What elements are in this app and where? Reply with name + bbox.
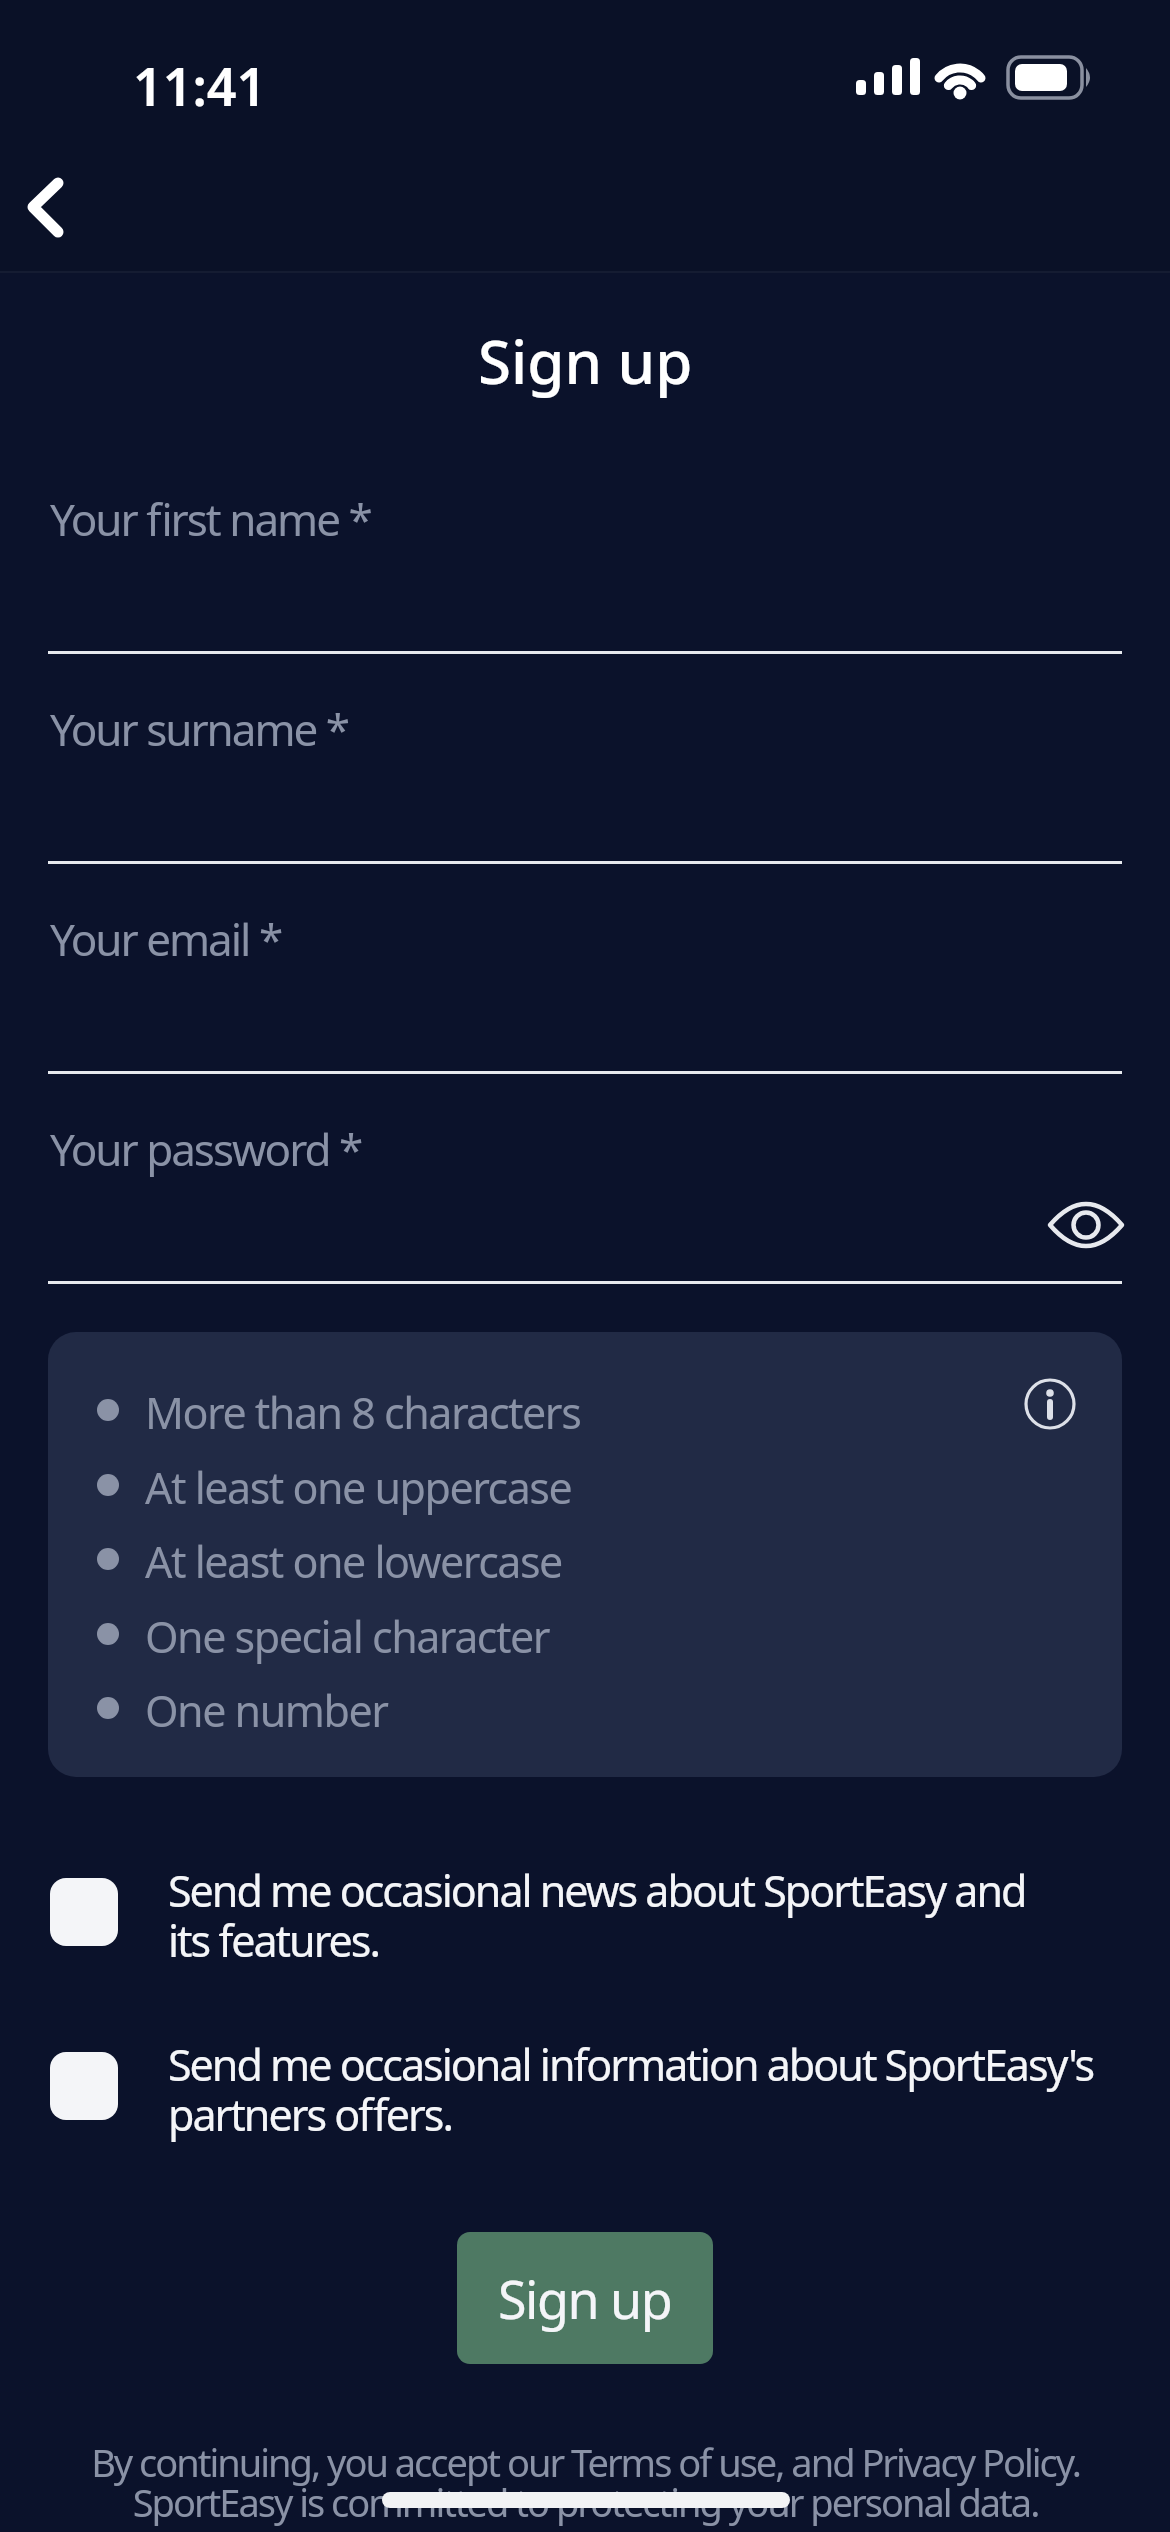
button[interactable]: By continuing, you accept our Terms of u… bbox=[0, 2436, 1170, 2528]
button[interactable] bbox=[48, 1125, 1122, 1285]
button[interactable] bbox=[48, 495, 1122, 655]
button[interactable] bbox=[1020, 1374, 1080, 1434]
button[interactable] bbox=[50, 2034, 1122, 2144]
staticText: Your password * bbox=[50, 1119, 362, 1179]
staticText: Your surname * bbox=[50, 699, 349, 759]
staticText: More than 8 characters bbox=[145, 1383, 581, 1442]
button[interactable] bbox=[10, 160, 100, 250]
staticText: Send me occasional information about Spo… bbox=[168, 2035, 1094, 2144]
staticText: Send me occasional news about SportEasy … bbox=[168, 1861, 1026, 1970]
staticText: One special character bbox=[145, 1607, 550, 1666]
button[interactable] bbox=[1040, 1180, 1130, 1270]
staticText: By continuing, you accept our Terms of u… bbox=[91, 2436, 1080, 2528]
staticText: 11:41 bbox=[133, 50, 267, 121]
button[interactable] bbox=[48, 915, 1122, 1075]
staticText: At least one uppercase bbox=[145, 1458, 572, 1517]
staticText: Your first name * bbox=[50, 489, 371, 549]
staticText: Sign up bbox=[478, 320, 693, 402]
staticText: At least one lowercase bbox=[145, 1532, 562, 1591]
button[interactable]: Sign up bbox=[457, 2232, 713, 2364]
button[interactable] bbox=[50, 1860, 1122, 1970]
button[interactable] bbox=[48, 705, 1122, 865]
staticText: Your email * bbox=[50, 909, 282, 969]
staticText: Sign up bbox=[498, 2263, 672, 2334]
staticText: One number bbox=[145, 1681, 388, 1740]
